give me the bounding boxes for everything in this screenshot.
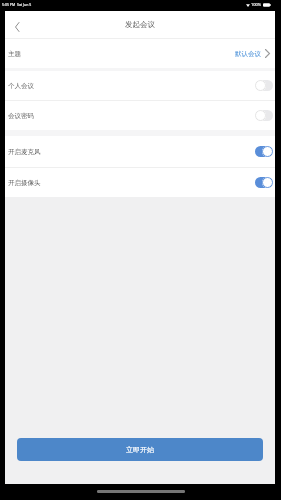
staticText: 开启麦克风 xyxy=(8,148,41,156)
staticText: 主题 xyxy=(8,50,21,58)
button[interactable] xyxy=(255,80,273,91)
staticText: 发起会议 xyxy=(125,20,155,29)
button[interactable] xyxy=(255,110,273,121)
staticText: 100% xyxy=(251,2,262,7)
button[interactable]: 个人会议 xyxy=(5,71,275,100)
button[interactable]: 会议密码 xyxy=(5,101,275,130)
staticText: 立即开始 xyxy=(126,445,154,454)
button[interactable] xyxy=(255,177,273,188)
button[interactable]: 主题 xyxy=(5,39,275,68)
staticText: 个人会议 xyxy=(8,82,34,90)
button[interactable]: 开启麦克风 xyxy=(5,136,275,167)
button[interactable] xyxy=(255,146,273,157)
button[interactable]: 立即开始 xyxy=(17,438,263,461)
button[interactable]: 开启摄像头 xyxy=(5,168,275,197)
staticText: 5:05 PM Sat Jun 5 xyxy=(2,2,32,7)
staticText: 默认会议 xyxy=(235,50,261,58)
button[interactable] xyxy=(5,11,27,38)
staticText: 开启摄像头 xyxy=(8,179,41,187)
staticText: 会议密码 xyxy=(8,112,34,120)
